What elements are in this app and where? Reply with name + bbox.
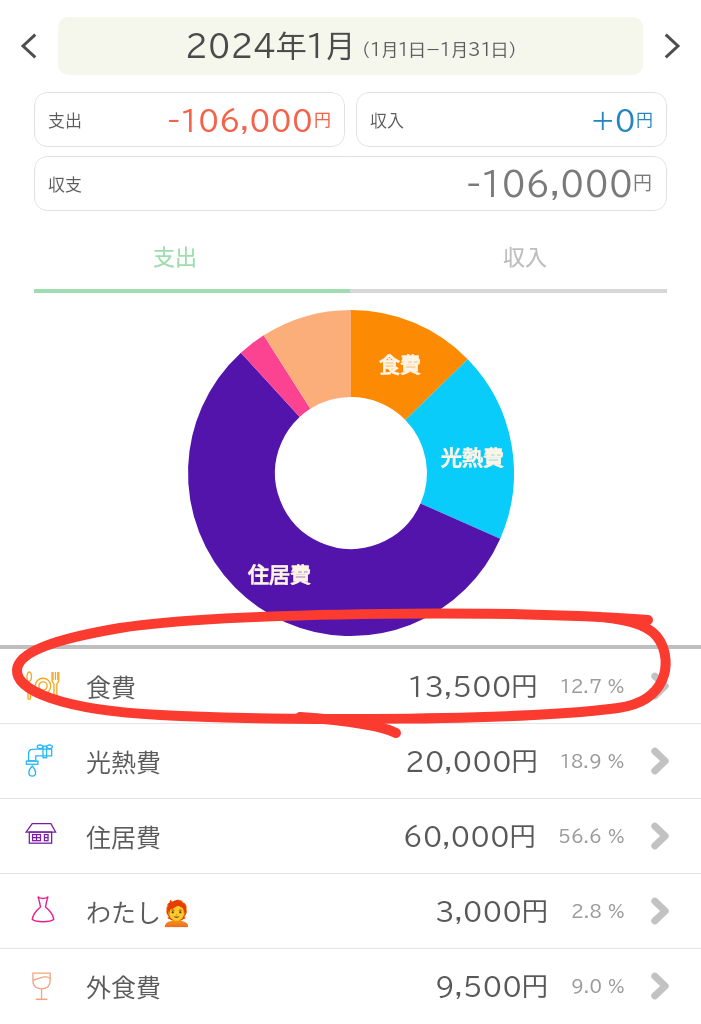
staticText: 9,500円 xyxy=(435,973,549,999)
staticText: 収入 xyxy=(370,107,404,132)
button[interactable]: 光熱費 xyxy=(0,724,701,798)
button[interactable]: 収入 xyxy=(350,220,701,289)
button[interactable]: 収入 xyxy=(356,92,667,147)
button[interactable]: 外食費 xyxy=(0,949,701,1023)
button[interactable]: 2024年1月 xyxy=(58,17,643,75)
button[interactable]: わたし🧑‍🦰 xyxy=(0,874,701,948)
staticText: 56.6 % xyxy=(558,828,625,845)
staticText: 食費 xyxy=(86,668,137,704)
staticText: 住居費 xyxy=(86,818,162,854)
staticText: 60,000円 xyxy=(403,823,536,849)
staticText: 支出 xyxy=(153,239,198,271)
staticText: 食費 xyxy=(379,348,421,378)
button[interactable]: 食費 xyxy=(0,649,701,723)
staticText: わたし🧑‍🦰 xyxy=(86,893,193,929)
staticText: +0 xyxy=(591,106,636,134)
staticText: 円 xyxy=(636,106,653,131)
button[interactable]: 支出 xyxy=(34,92,345,147)
staticText: 13,500円 xyxy=(408,673,538,699)
staticText: -106,000 xyxy=(167,106,314,134)
staticText: 9.0 % xyxy=(571,978,625,995)
button[interactable]: 収支 xyxy=(34,156,667,211)
staticText: 円 xyxy=(314,106,331,131)
staticText: 3,000円 xyxy=(435,898,549,924)
staticText: 2.8 % xyxy=(571,903,625,920)
button[interactable]: Next month xyxy=(643,17,701,75)
staticText: 20,000円 xyxy=(405,748,538,774)
button[interactable]: 支出 xyxy=(0,220,350,289)
staticText: 収支 xyxy=(48,171,82,196)
staticText: 外食費 xyxy=(86,968,162,1004)
staticText: -106,000 xyxy=(466,168,633,200)
staticText: 収入 xyxy=(503,239,548,271)
staticText: 18.9 % xyxy=(560,753,625,770)
staticText: 12.7 % xyxy=(560,678,625,695)
staticText: (1月1日−1月31日) xyxy=(362,41,517,58)
staticText: 2024年1月 xyxy=(185,31,356,61)
button[interactable]: Previous month xyxy=(0,17,58,75)
staticText: 光熱費 xyxy=(86,743,162,779)
staticText: 住居費 xyxy=(248,558,311,588)
staticText: 円 xyxy=(633,168,653,196)
staticText: 支出 xyxy=(48,107,82,132)
button[interactable]: 住居費 xyxy=(0,799,701,873)
staticText: 光熱費 xyxy=(441,441,504,471)
